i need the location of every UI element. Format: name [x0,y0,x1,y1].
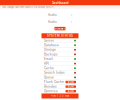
staticText: › [71,13,72,17]
button[interactable]: Search Index [41,70,78,75]
staticText: Email [44,57,53,61]
staticText: Search Index [44,71,65,74]
staticText: Audio [48,20,57,24]
staticText: › [71,20,72,24]
staticText: Dashboard [51,1,68,5]
staticText: Next [64,94,69,97]
staticText: RUN [68,85,74,88]
staticText: API [44,62,49,65]
staticText: Storage [44,48,56,51]
button[interactable]: Server [41,38,78,43]
button[interactable]: Email [41,57,78,61]
staticText: 3 [62,94,63,97]
staticText: RUN [68,80,74,84]
button[interactable]: Backups [41,52,78,57]
staticText: RUN [68,90,74,93]
staticText: Queue [44,76,54,79]
button[interactable]: RUN [65,85,76,88]
staticText: SUBMIT [54,27,65,30]
button[interactable]: Cache [41,66,78,70]
button[interactable]: Database [41,43,78,47]
button[interactable]: SUBMIT [54,27,65,30]
button[interactable]: API [41,61,78,66]
button[interactable]: RUN [65,81,76,83]
staticText: Backups [44,53,58,56]
staticText: Audio [48,13,57,17]
staticText: Flush Cache [44,80,64,84]
button[interactable]: Audio [48,18,72,25]
staticText: SYSTEM STATUS [47,34,73,37]
button[interactable]: RUN [65,90,76,92]
staticText: Cache [44,66,54,70]
staticText: 1 [57,94,58,97]
staticText: Your changes have been saved to the acco… [2,6,54,8]
staticText: Server [44,39,54,42]
button[interactable]: Audio [48,12,72,18]
button[interactable]: Dashboard [0,0,120,5]
staticText: Reindex [44,85,57,88]
button[interactable]: Storage [41,47,78,52]
staticText: Database [44,43,59,47]
staticText: Prev [50,94,55,97]
button[interactable]: Queue [41,75,78,80]
staticText: Optimise [44,89,58,93]
